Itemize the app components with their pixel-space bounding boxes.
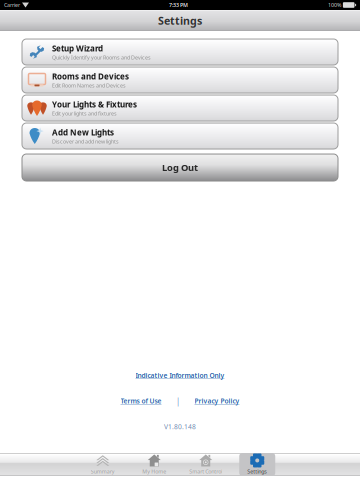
staticText: Edit Room Names and Devices bbox=[52, 82, 126, 89]
staticText: Quickly Identify your Rooms and Devices bbox=[52, 54, 151, 61]
staticText: V1.80.148 bbox=[164, 422, 196, 431]
staticText: Privacy Policy bbox=[194, 396, 239, 405]
staticText: 100% bbox=[328, 1, 341, 9]
button[interactable]: Smart Control bbox=[188, 453, 224, 476]
staticText: | bbox=[175, 395, 180, 407]
staticText: Discover and add new lights bbox=[52, 138, 119, 145]
button[interactable]: Privacy Policy bbox=[194, 396, 239, 405]
button[interactable]: Terms of Use bbox=[120, 396, 161, 405]
button[interactable]: Add New Lights bbox=[22, 123, 338, 149]
staticText: Summary bbox=[91, 468, 115, 475]
staticText: Terms of Use bbox=[120, 396, 161, 405]
staticText: Add New Lights bbox=[52, 127, 114, 138]
staticText: Your Lights & Fixtures bbox=[52, 99, 137, 110]
button[interactable]: Log Out bbox=[22, 154, 338, 181]
staticText: Indicative Information Only bbox=[135, 371, 224, 380]
staticText: Rooms and Devices bbox=[52, 71, 129, 82]
staticText: Edit your lights and fixtures bbox=[52, 110, 117, 117]
button[interactable]: Summary bbox=[85, 453, 121, 476]
staticText: Settings bbox=[158, 13, 202, 28]
button[interactable]: My Home bbox=[136, 453, 172, 476]
staticText: My Home bbox=[142, 468, 166, 475]
button[interactable]: Rooms and Devices bbox=[22, 67, 338, 93]
button[interactable]: Setup Wizard bbox=[22, 39, 338, 65]
staticText: 7:33 PM bbox=[169, 1, 188, 9]
staticText: Smart Control bbox=[189, 468, 222, 475]
button[interactable]: Indicative Information Only bbox=[135, 371, 224, 380]
staticText: Setup Wizard bbox=[52, 43, 103, 54]
staticText: Carrier bbox=[4, 1, 20, 9]
staticText: Log Out bbox=[162, 161, 198, 174]
staticText: Settings bbox=[247, 468, 267, 475]
button[interactable]: Settings bbox=[239, 453, 275, 476]
button[interactable]: Your Lights & Fixtures bbox=[22, 95, 338, 121]
